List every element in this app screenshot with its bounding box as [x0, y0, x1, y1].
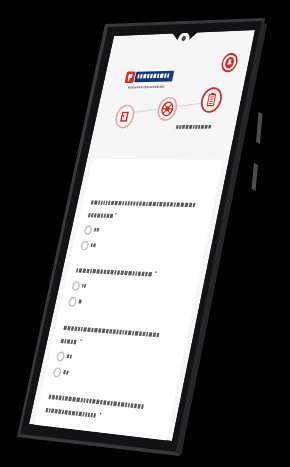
button[interactable]: Postbank application form shown on a pho… [0, 0, 290, 467]
